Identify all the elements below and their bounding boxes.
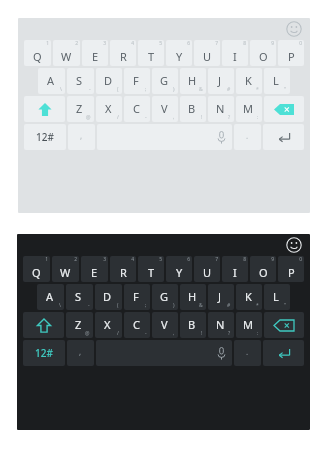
staticText: ): [173, 302, 175, 309]
staticText: 6: [187, 40, 190, 47]
button[interactable]: N: [208, 312, 234, 338]
button[interactable]: 6: [166, 256, 192, 282]
button[interactable]: 4: [110, 40, 136, 66]
button[interactable]: M: [236, 312, 262, 338]
staticText: *: [256, 86, 259, 93]
staticText: ,: [173, 114, 175, 121]
button[interactable]: Shift: [23, 312, 64, 338]
button[interactable]: A: [38, 68, 65, 94]
button[interactable]: Space: [97, 124, 232, 150]
staticText: C: [133, 101, 140, 116]
button[interactable]: Enter: [263, 340, 304, 366]
staticText: O: [259, 49, 268, 64]
staticText: (: [117, 86, 119, 93]
button[interactable]: C: [124, 312, 150, 338]
staticText: 9: [271, 40, 274, 47]
button[interactable]: 2: [53, 40, 80, 66]
button[interactable]: X: [96, 96, 122, 122]
button[interactable]: F: [124, 68, 150, 94]
button[interactable]: 0: [278, 256, 304, 282]
button[interactable]: 6: [166, 40, 192, 66]
staticText: B: [188, 101, 196, 116]
staticText: :: [257, 114, 259, 121]
staticText: #: [227, 302, 231, 309]
button[interactable]: N: [208, 96, 234, 122]
staticText: O: [259, 265, 268, 280]
staticText: ;: [145, 302, 147, 309]
button[interactable]: 3: [82, 40, 108, 66]
staticText: 4: [131, 40, 134, 47]
button[interactable]: S: [67, 68, 94, 94]
button[interactable]: 0: [278, 40, 304, 66]
button[interactable]: 9: [250, 256, 276, 282]
staticText: .: [246, 346, 249, 357]
button[interactable]: Z: [66, 312, 93, 338]
button[interactable]: Space: [96, 340, 232, 366]
button[interactable]: 7: [194, 40, 220, 66]
button[interactable]: S: [66, 284, 93, 310]
button[interactable]: 12#: [24, 124, 66, 150]
staticText: I: [233, 49, 237, 64]
button[interactable]: V: [152, 96, 178, 122]
staticText: C: [133, 317, 140, 332]
staticText: #: [227, 86, 231, 93]
button[interactable]: B: [180, 312, 206, 338]
button[interactable]: V: [152, 312, 178, 338]
button[interactable]: 1: [24, 40, 51, 66]
button[interactable]: 5: [138, 40, 164, 66]
button[interactable]: F: [124, 284, 150, 310]
staticText: E: [91, 265, 98, 280]
button[interactable]: D: [95, 284, 122, 310]
button[interactable]: ,: [67, 340, 94, 366]
button[interactable]: G: [152, 68, 178, 94]
button[interactable]: C: [124, 96, 150, 122]
button[interactable]: Emoji: [286, 237, 302, 253]
button[interactable]: J: [208, 284, 234, 310]
staticText: -: [88, 302, 90, 309]
staticText: T: [148, 265, 155, 280]
button[interactable]: 2: [52, 256, 79, 282]
button[interactable]: A: [37, 284, 64, 310]
button[interactable]: 9: [250, 40, 276, 66]
button[interactable]: 7: [194, 256, 220, 282]
button[interactable]: Shift: [24, 96, 65, 122]
button[interactable]: 8: [222, 40, 248, 66]
button[interactable]: Enter: [263, 124, 304, 150]
button[interactable]: Emoji: [286, 21, 302, 37]
button[interactable]: D: [96, 68, 122, 94]
staticText: H: [188, 289, 197, 304]
button[interactable]: X: [95, 312, 122, 338]
button[interactable]: 4: [110, 256, 136, 282]
button[interactable]: 1: [23, 256, 50, 282]
button[interactable]: Backspace: [264, 312, 304, 338]
staticText: 0: [299, 40, 302, 47]
button[interactable]: L: [264, 284, 290, 310]
button[interactable]: 3: [81, 256, 108, 282]
button[interactable]: K: [236, 68, 262, 94]
staticText: V: [161, 101, 168, 116]
staticText: 2: [74, 256, 77, 263]
button[interactable]: H: [180, 68, 206, 94]
button[interactable]: Z: [67, 96, 94, 122]
button[interactable]: 12#: [23, 340, 65, 366]
button[interactable]: M: [236, 96, 262, 122]
staticText: H: [188, 73, 197, 88]
button[interactable]: G: [152, 284, 178, 310]
button[interactable]: H: [180, 284, 206, 310]
staticText: K: [245, 289, 252, 304]
staticText: 9: [271, 256, 274, 263]
button[interactable]: K: [236, 284, 262, 310]
staticText: 8: [243, 40, 246, 47]
button[interactable]: J: [208, 68, 234, 94]
button[interactable]: Backspace: [264, 96, 304, 122]
staticText: :: [257, 330, 259, 337]
staticText: 7: [215, 256, 218, 263]
button[interactable]: 8: [222, 256, 248, 282]
staticText: ;: [145, 86, 147, 93]
button[interactable]: L: [264, 68, 290, 94]
button[interactable]: B: [180, 96, 206, 122]
button[interactable]: 5: [138, 256, 164, 282]
